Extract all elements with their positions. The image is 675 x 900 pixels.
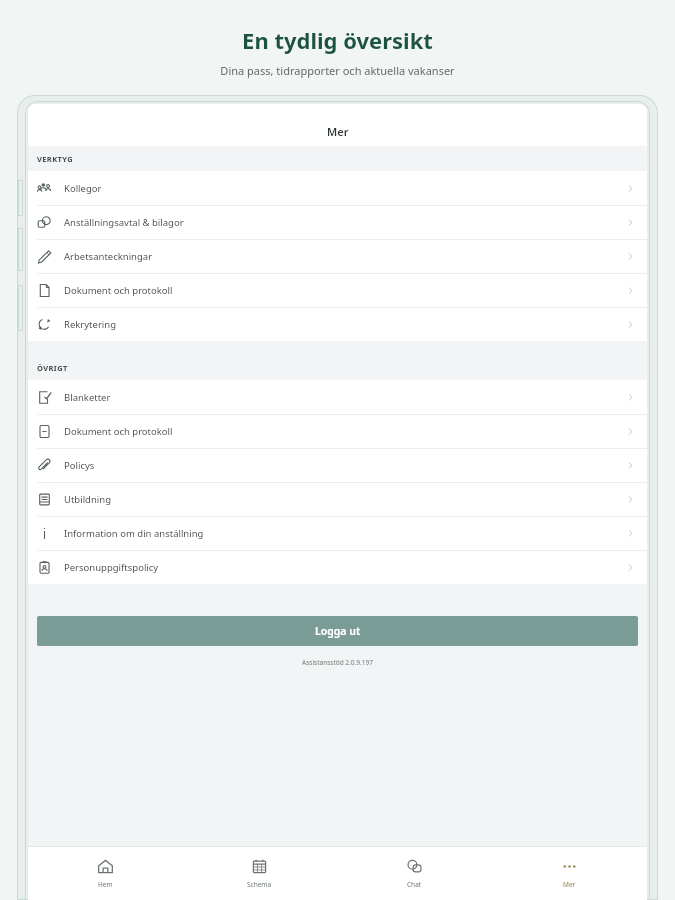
staticText: Mer: [563, 880, 576, 889]
button[interactable]: Hem: [28, 847, 182, 900]
staticText: Personuppgiftspolicy: [64, 561, 159, 574]
staticText: Chat: [407, 880, 422, 889]
staticText: Dokument och protokoll: [64, 284, 173, 297]
staticText: Arbetsanteckningar: [64, 250, 153, 263]
staticText: Hem: [98, 880, 113, 889]
staticText: En tydlig översikt: [242, 25, 433, 55]
button[interactable]: Anställningsavtal & bilagor: [28, 205, 647, 239]
button[interactable]: Information om din anställning: [28, 516, 647, 550]
button[interactable]: Dokument och protokoll: [28, 414, 647, 448]
staticText: Utbildning: [64, 493, 111, 506]
button[interactable]: Kollegor: [28, 171, 647, 205]
staticText: Assistansstöd 2.0.9.197: [302, 658, 373, 667]
staticText: Anställningsavtal & bilagor: [64, 216, 184, 229]
button[interactable]: Rekrytering: [28, 307, 647, 341]
button[interactable]: Policys: [28, 448, 647, 482]
button[interactable]: Arbetsanteckningar: [28, 239, 647, 273]
button[interactable]: Utbildning: [28, 482, 647, 516]
button[interactable]: Dokument och protokoll: [28, 273, 647, 307]
button[interactable]: Chat: [337, 847, 492, 900]
button[interactable]: Schema: [182, 847, 337, 900]
staticText: Dokument och protokoll: [64, 425, 173, 438]
staticText: Dina pass, tidrapporter och aktuella vak…: [220, 63, 455, 78]
staticText: ÖVRIGT: [37, 363, 68, 373]
button[interactable]: Personuppgiftspolicy: [28, 550, 647, 584]
button[interactable]: Blanketter: [28, 380, 647, 414]
button[interactable]: Mer: [492, 847, 647, 900]
staticText: Blanketter: [64, 391, 111, 404]
staticText: Schema: [247, 880, 272, 889]
staticText: Policys: [64, 459, 95, 472]
staticText: Logga ut: [315, 624, 361, 638]
staticText: Kollegor: [64, 182, 102, 195]
staticText: VERKTYG: [37, 154, 74, 164]
staticText: Rekrytering: [64, 318, 116, 331]
staticText: Information om din anställning: [64, 527, 204, 540]
button[interactable]: Logga ut: [37, 616, 638, 646]
staticText: Mer: [327, 124, 349, 139]
